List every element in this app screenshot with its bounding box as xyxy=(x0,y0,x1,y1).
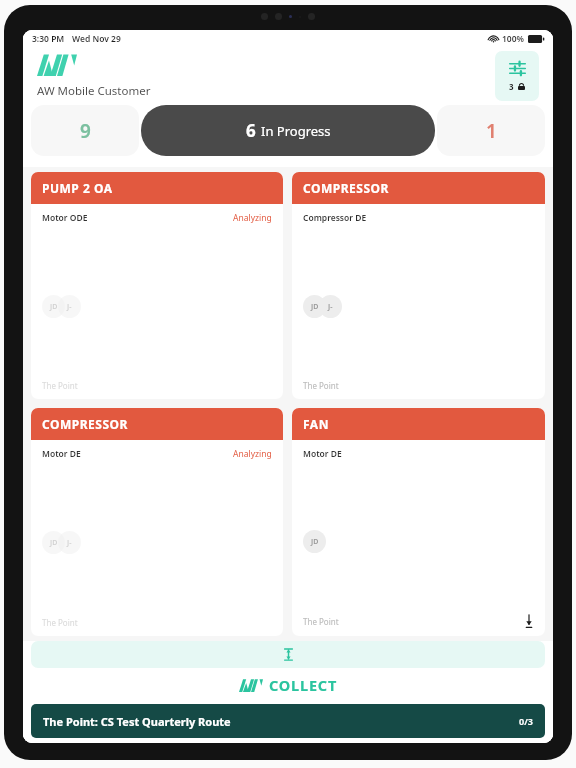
staticText: COLLECT xyxy=(269,675,338,695)
staticText: JD xyxy=(50,302,58,312)
staticText: JD xyxy=(50,538,58,548)
staticText: The Point xyxy=(303,616,339,627)
staticText: 100% xyxy=(502,33,525,45)
staticText: The Point xyxy=(42,380,78,391)
staticText: J- xyxy=(328,302,333,312)
staticText: 1 xyxy=(486,118,497,144)
button[interactable]: 1 xyxy=(437,105,545,156)
staticText: The Point xyxy=(42,617,78,628)
staticText: PUMP 2 OA xyxy=(42,180,113,196)
staticText: 0/3 xyxy=(519,715,533,727)
staticText: J- xyxy=(67,302,72,312)
button[interactable]: Filters xyxy=(495,51,539,101)
staticText: COMPRESSOR xyxy=(42,416,128,432)
button[interactable]: COMPRESSOR xyxy=(31,408,283,636)
staticText: AW Mobile Customer xyxy=(37,83,151,99)
button[interactable]: 9 xyxy=(31,105,139,156)
button[interactable]: The Point: CS Test Quarterly Route xyxy=(31,704,545,738)
button[interactable]: COLLECT xyxy=(23,668,553,702)
staticText: 3 xyxy=(509,81,514,92)
staticText: Motor DE xyxy=(42,448,81,460)
staticText: J- xyxy=(67,538,72,548)
staticText: COMPRESSOR xyxy=(303,180,389,196)
staticText: Wed Nov 29 xyxy=(72,33,121,45)
staticText: The Point xyxy=(303,380,339,391)
staticText: Analyzing xyxy=(233,448,272,460)
staticText: JD xyxy=(311,537,319,547)
button[interactable]: PUMP 2 OA xyxy=(31,172,283,399)
button[interactable]: Resize panel xyxy=(31,641,545,668)
button[interactable]: FAN xyxy=(292,408,545,636)
button[interactable]: 6 xyxy=(141,105,435,156)
staticText: Analyzing xyxy=(233,212,272,224)
staticText: Compressor DE xyxy=(303,212,367,224)
staticText: The Point: CS Test Quarterly Route xyxy=(43,714,231,729)
staticText: Motor ODE xyxy=(42,212,88,224)
button[interactable]: COMPRESSOR xyxy=(292,172,545,399)
staticText: Motor DE xyxy=(303,448,342,460)
staticText: In Progress xyxy=(261,122,331,140)
staticText: FAN xyxy=(303,416,329,432)
staticText: 6 xyxy=(246,119,256,142)
staticText: JD xyxy=(311,302,319,312)
staticText: 3:30 PM xyxy=(32,33,65,45)
button[interactable]: Download xyxy=(522,614,536,628)
staticText: 9 xyxy=(80,118,91,144)
